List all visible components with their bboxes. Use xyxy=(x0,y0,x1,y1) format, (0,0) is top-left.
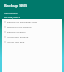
staticText: About this app xyxy=(7,40,25,43)
staticText: Backup SMS xyxy=(4,3,28,8)
staticText: Backup all messages now xyxy=(7,20,37,23)
button[interactable]: Restore from backup xyxy=(2,24,62,29)
button[interactable]: Backup location xyxy=(2,29,62,34)
staticText: Last backup xyxy=(4,11,18,14)
staticText: Backup location xyxy=(7,30,26,33)
button[interactable]: Backup all messages now xyxy=(2,19,62,24)
staticText: Automatic backup xyxy=(7,35,29,38)
staticText: 23 Aug, 09:14 xyxy=(4,15,20,18)
button[interactable]: Automatic backup xyxy=(2,34,62,39)
staticText: Restore from backup xyxy=(7,25,32,28)
button[interactable]: About this app xyxy=(2,39,62,44)
